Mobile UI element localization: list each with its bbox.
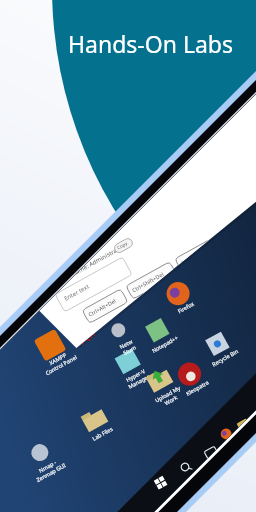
button[interactable] [0,0,256,512]
